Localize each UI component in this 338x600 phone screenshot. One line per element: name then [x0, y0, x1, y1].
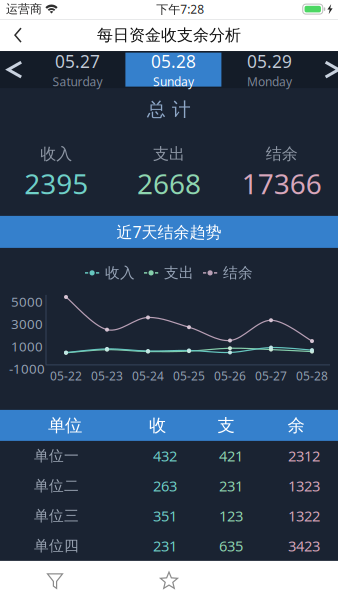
staticText: 17366 [242, 165, 322, 202]
staticText: 1000 [11, 337, 43, 355]
button[interactable]: 05.28 [125, 53, 221, 87]
staticText: 05-26 [214, 368, 246, 384]
staticText: 05-24 [132, 368, 164, 384]
staticText: 结余 [266, 144, 298, 164]
staticText: 单位四 [34, 537, 79, 555]
staticText: 3000 [11, 315, 43, 333]
staticText: 1322 [288, 506, 320, 526]
staticText: Sunday [153, 74, 194, 90]
staticText: 单位一 [34, 447, 79, 465]
staticText: 2668 [137, 165, 201, 202]
staticText: 421 [219, 446, 243, 466]
staticText: 每日资金收支余分析 [97, 25, 241, 45]
staticText: 下午7:28 [156, 1, 204, 17]
staticText: Saturday [52, 74, 102, 90]
button[interactable]: 05.29 [221, 53, 317, 87]
staticText: 单位二 [34, 477, 79, 495]
button[interactable]: 单位一 [0, 441, 338, 471]
staticText: 5000 [11, 293, 43, 310]
staticText: 05-22 [50, 368, 82, 384]
staticText: 收入 [105, 264, 135, 282]
staticText: 2395 [24, 165, 88, 202]
staticText: 收入 [40, 144, 72, 164]
staticText: 结余 [223, 264, 253, 282]
staticText: 总 计 [147, 98, 191, 121]
staticText: 05-28 [296, 368, 328, 384]
staticText: 123 [219, 506, 243, 526]
staticText: -1000 [9, 360, 45, 377]
button[interactable]: Back [0, 26, 36, 44]
staticText: 近7天结余趋势 [116, 221, 221, 242]
staticText: 支出 [164, 264, 194, 282]
button[interactable]: Previous day [0, 60, 29, 79]
button[interactable]: Filter [33, 561, 77, 600]
staticText: 432 [153, 446, 177, 466]
staticText: Monday [247, 74, 292, 90]
staticText: 231 [153, 536, 177, 556]
staticText: 05-23 [91, 368, 123, 384]
button[interactable]: Next day [317, 60, 338, 79]
staticText: 263 [153, 476, 177, 496]
staticText: 635 [219, 536, 243, 556]
button[interactable]: 单位二 [0, 471, 338, 501]
staticText: 05.27 [55, 50, 100, 73]
button[interactable]: Favorite [147, 561, 191, 600]
staticText: 3423 [288, 536, 320, 556]
staticText: 单位三 [34, 507, 79, 525]
button[interactable]: 单位四 [0, 531, 338, 561]
staticText: 支出 [153, 144, 185, 164]
staticText: 05.29 [247, 50, 292, 73]
staticText: 05.28 [151, 50, 196, 73]
staticText: 收 [149, 415, 166, 436]
staticText: 05-25 [173, 368, 205, 384]
staticText: 单位 [48, 415, 82, 436]
staticText: 1323 [288, 476, 320, 496]
staticText: 2312 [288, 446, 320, 466]
staticText: 余 [287, 415, 304, 436]
staticText: 351 [153, 506, 177, 526]
staticText: 05-27 [255, 368, 287, 384]
button[interactable]: 单位三 [0, 501, 338, 531]
staticText: 支 [217, 415, 234, 436]
button[interactable]: 05.27 [29, 53, 125, 87]
staticText: 231 [219, 476, 243, 496]
staticText: 运营商 [6, 2, 42, 16]
